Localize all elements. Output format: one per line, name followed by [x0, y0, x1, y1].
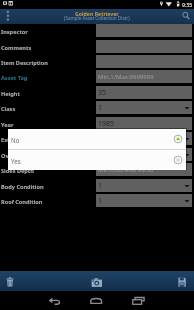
- staticText: Sides Depth: [1, 167, 96, 175]
- button[interactable]: Asset Tag: [0, 69, 194, 84]
- staticText: Height: [1, 90, 96, 98]
- button[interactable]: Body Condition: [0, 178, 194, 193]
- button[interactable]: Inspector: [0, 23, 194, 38]
- staticText: Overall Condition: [1, 152, 96, 160]
- button[interactable]: Menu: [0, 9, 16, 24]
- staticText: 9:35: [182, 1, 193, 8]
- button[interactable]: Year: [0, 116, 194, 131]
- button[interactable]: Search: [176, 9, 194, 24]
- staticText: Comments: [1, 44, 96, 52]
- button[interactable]: Recents: [126, 291, 150, 309]
- staticText: Class: [1, 105, 96, 113]
- button[interactable]: Comments: [0, 39, 194, 54]
- staticText: Min:0.00/Max:99.00: [98, 166, 154, 174]
- button[interactable]: Sides Depth: [0, 162, 194, 177]
- staticText: 35: [98, 88, 107, 98]
- button[interactable]: Roof Condition: [0, 193, 194, 208]
- button[interactable]: Estimated Life: [0, 131, 194, 146]
- button[interactable]: Back: [44, 291, 68, 309]
- button[interactable]: Height: [0, 85, 194, 100]
- button[interactable]: Class: [0, 100, 194, 115]
- staticText: Asset Tag: [1, 74, 96, 82]
- staticText: Inspector: [1, 28, 96, 36]
- staticText: 1: [98, 103, 103, 113]
- button[interactable]: Overall Condition: [0, 147, 194, 162]
- button[interactable]: Camera: [86, 272, 108, 292]
- button[interactable]: Delete: [1, 272, 19, 292]
- staticText: 1985: [98, 119, 115, 129]
- staticText: 1: [98, 196, 103, 206]
- staticText: Year: [1, 121, 96, 129]
- staticText: (Sample Asset Collection Distr): [64, 15, 130, 21]
- staticText: Golden Retriever: [75, 10, 119, 17]
- staticText: Min.1/Max:9999999: [98, 73, 154, 81]
- staticText: No: [11, 136, 173, 144]
- staticText: Item Description: [1, 59, 96, 67]
- button[interactable]: Save: [173, 272, 191, 292]
- button[interactable]: Home: [85, 291, 109, 309]
- staticText: Estimated Life: [1, 136, 96, 144]
- staticText: Yes: [11, 157, 173, 165]
- staticText: 1: [98, 181, 103, 191]
- button[interactable]: No: [8, 129, 186, 149]
- staticText: Body Condition: [1, 183, 96, 191]
- staticText: Roof Condition: [1, 198, 96, 206]
- button[interactable]: Item Description: [0, 54, 194, 69]
- button[interactable]: Yes: [8, 150, 186, 170]
